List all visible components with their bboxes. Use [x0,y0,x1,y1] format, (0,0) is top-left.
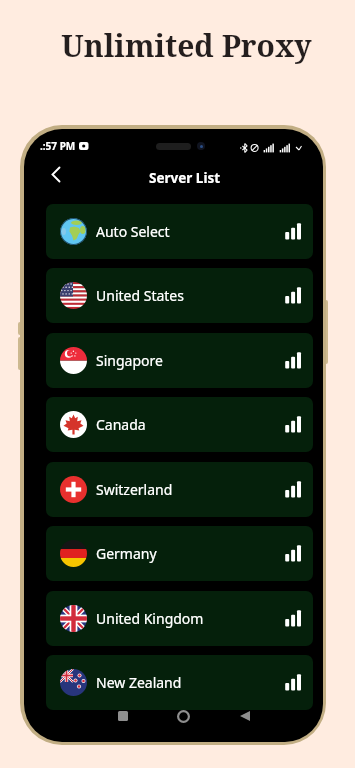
button[interactable] [48,165,62,183]
button[interactable]: United States [46,268,313,323]
button[interactable] [112,705,134,727]
staticText: Auto Select [96,222,170,241]
staticText: Germany [96,544,157,563]
button[interactable] [172,705,194,727]
staticText: .:57 PM [40,139,76,153]
button[interactable]: Switzerland [46,462,313,517]
button[interactable]: Singapore [46,333,313,388]
staticText: Server List [149,169,221,185]
staticText: Switzerland [96,480,173,499]
button[interactable]: Auto Select [46,204,313,259]
button[interactable] [234,705,256,727]
staticText: New Zealand [96,673,182,692]
staticText: Singapore [96,351,163,370]
staticText: Canada [96,415,146,434]
button[interactable]: New Zealand [46,655,313,710]
staticText: United Kingdom [96,609,204,628]
button[interactable]: Germany [46,526,313,581]
button[interactable]: United Kingdom [46,591,313,646]
staticText: Unlimited Proxy [9,25,355,66]
staticText: United States [96,286,184,305]
button[interactable]: Canada [46,397,313,452]
